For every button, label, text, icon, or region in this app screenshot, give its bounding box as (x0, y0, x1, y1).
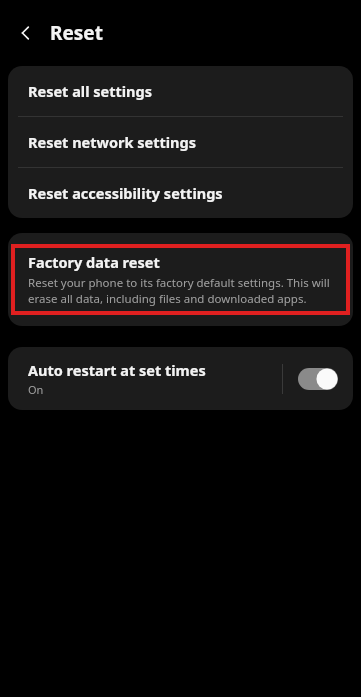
staticText: Reset your phone to its factory default … (28, 275, 336, 306)
button[interactable]: Back (6, 13, 46, 53)
button[interactable]: Auto restart toggle (297, 359, 339, 399)
staticText: Reset accessibility settings (28, 183, 223, 203)
staticText: Reset all settings (28, 81, 152, 101)
button[interactable]: Factory data reset (11, 244, 350, 315)
button[interactable]: Reset accessibility settings (8, 168, 353, 218)
button[interactable]: Reset all settings (8, 66, 353, 116)
staticText: Reset (50, 20, 103, 46)
staticText: Reset network settings (28, 132, 196, 152)
button[interactable]: Auto restart at set times (28, 360, 282, 397)
button[interactable]: Reset network settings (8, 117, 353, 167)
staticText: Auto restart at set times (28, 360, 206, 380)
staticText: On (28, 382, 44, 397)
staticText: Factory data reset (28, 252, 160, 272)
